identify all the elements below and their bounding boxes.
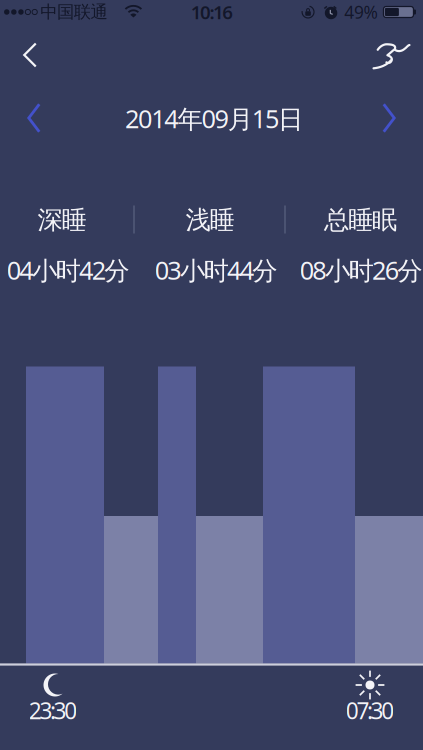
staticText: 03小时44分 [155, 253, 277, 287]
button[interactable] [12, 31, 48, 78]
button[interactable] [374, 94, 404, 142]
staticText: 23:30 [29, 695, 77, 725]
staticText: 浅睡 [185, 204, 234, 235]
staticText: 04小时42分 [7, 253, 129, 287]
staticText: 49% [344, 0, 377, 23]
button[interactable] [19, 94, 49, 142]
staticText: 08小时26分 [300, 253, 422, 287]
staticText: 10:16 [191, 0, 233, 24]
staticText: 中国联通 [40, 1, 107, 23]
staticText: 07:30 [346, 695, 394, 725]
staticText: 2014年09月15日 [125, 102, 303, 135]
button[interactable] [365, 35, 418, 76]
staticText: 总睡眠 [324, 204, 397, 235]
staticText: 深睡 [37, 204, 86, 235]
